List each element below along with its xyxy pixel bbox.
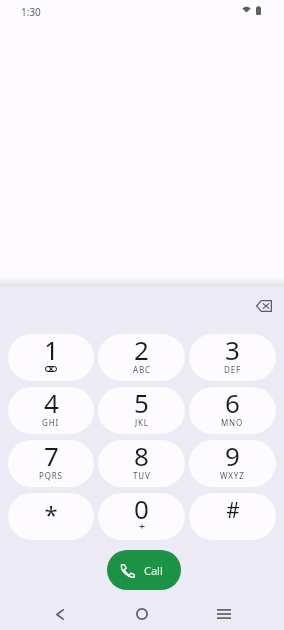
staticText: *: [44, 498, 58, 531]
staticText: #: [226, 496, 240, 525]
button[interactable]: 1: [8, 334, 94, 381]
staticText: 7: [44, 440, 59, 473]
staticText: 9: [225, 440, 240, 473]
staticText: 1:30: [21, 5, 41, 19]
button[interactable]: Backspace: [250, 292, 278, 320]
button[interactable]: Back: [44, 598, 76, 630]
button[interactable]: 5: [98, 387, 185, 434]
staticText: 5: [134, 387, 149, 420]
staticText: 8: [134, 440, 149, 473]
staticText: 2: [134, 334, 149, 367]
staticText: TUV: [133, 470, 151, 481]
button[interactable]: 4: [8, 387, 94, 434]
button[interactable]: Home: [126, 598, 158, 630]
staticText: 0: [134, 493, 149, 526]
button[interactable]: Call: [107, 550, 181, 590]
button[interactable]: 8: [98, 440, 185, 487]
staticText: DEF: [224, 364, 241, 375]
staticText: 6: [225, 387, 240, 420]
button[interactable]: 7: [8, 440, 94, 487]
staticText: 4: [44, 387, 59, 420]
staticText: WXYZ: [220, 470, 245, 481]
staticText: ABC: [133, 364, 151, 375]
staticText: MNO: [221, 417, 244, 428]
button[interactable]: #: [189, 493, 276, 540]
staticText: 3: [225, 334, 240, 367]
staticText: Call: [144, 563, 163, 578]
button[interactable]: 6: [189, 387, 276, 434]
staticText: 1: [44, 334, 59, 367]
button[interactable]: 3: [189, 334, 276, 381]
staticText: PQRS: [39, 470, 63, 481]
button[interactable]: Recent apps: [208, 598, 240, 630]
button[interactable]: 0: [98, 493, 185, 540]
button[interactable]: 9: [189, 440, 276, 487]
staticText: GHI: [42, 417, 60, 428]
button[interactable]: 2: [98, 334, 185, 381]
button[interactable]: *: [8, 493, 94, 540]
staticText: JKL: [135, 417, 149, 428]
